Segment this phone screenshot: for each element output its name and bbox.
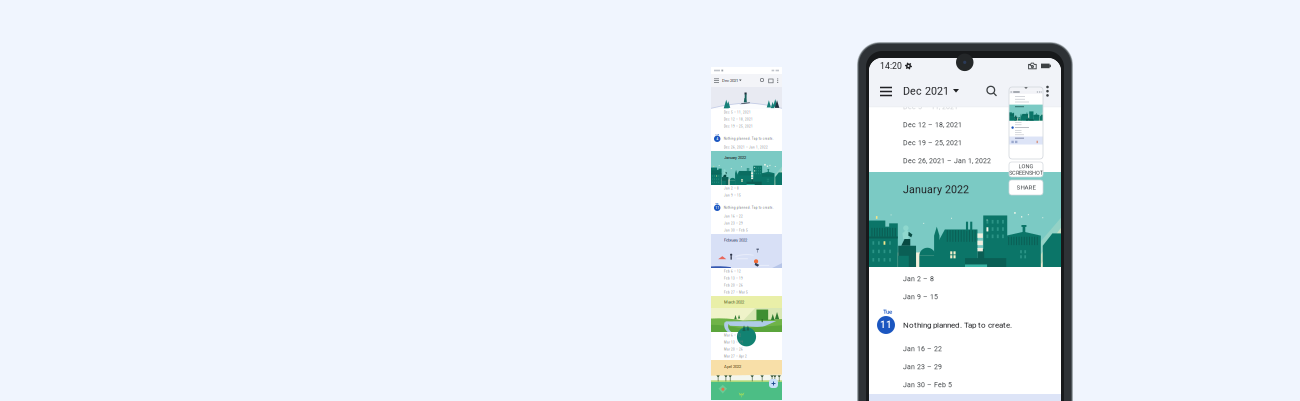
staticText: Dec 12 – 18, 2021 (724, 118, 753, 121)
staticText: Jan 30 – Feb 5 (724, 229, 748, 232)
button[interactable]: Dec 19 – 25, 2021 (869, 134, 1061, 152)
staticText: Jan 30 – Feb 5 (903, 381, 952, 389)
staticText: SCREENSHOT (1009, 169, 1043, 176)
staticText: January 2022 (724, 155, 746, 160)
staticText: Feb 13 – 19 (724, 277, 743, 280)
staticText: Mar 13 – 19 (724, 341, 743, 344)
staticText: Nothing planned. Tap to create. (724, 137, 774, 140)
staticText: Mar 27 – Apr 2 (724, 355, 747, 358)
staticText: Jan 9 – 15 (903, 293, 938, 301)
staticText: February 2022 (724, 238, 747, 242)
staticText: Jan 9 – 15 (724, 194, 741, 197)
button[interactable]: Dec 26, 2021 – Jan 1, 2022 (869, 152, 1061, 170)
staticText: Feb 27 – Mar 5 (724, 291, 748, 294)
button[interactable]: Dec 5 – 11, 2021 (869, 98, 1061, 116)
button[interactable]: Jan 30 – Feb 5 (869, 376, 1061, 394)
staticText: Dec 5 – 11, 2021 (903, 103, 958, 111)
staticText: Jan 23 – 29 (903, 363, 942, 371)
staticText: 11 (880, 319, 892, 331)
staticText: Tue (883, 308, 892, 315)
staticText: Dec 19 – 25, 2021 (724, 125, 753, 128)
staticText: Jan 2 – 8 (903, 275, 934, 283)
staticText: Dec 2021 (722, 78, 738, 83)
staticText: Nothing planned. Tap to create. (903, 320, 1012, 330)
staticText: Dec 2021 (903, 85, 949, 97)
staticText: January 2022 (903, 183, 969, 196)
staticText: Dec 26, 2021 – Jan 1, 2022 (903, 157, 991, 165)
staticText: Mar 20 – 26 (724, 348, 743, 351)
button[interactable]: SHARE (1009, 180, 1043, 195)
staticText: 4 (716, 137, 718, 141)
staticText: Mar 6 – 12 (724, 334, 741, 337)
staticText: LONG (1018, 163, 1033, 169)
button[interactable]: Dec 2021 (903, 81, 959, 101)
button[interactable]: More options (1042, 81, 1053, 100)
staticText: Jan 16 – 22 (724, 215, 743, 218)
staticText: March 2022 (724, 300, 744, 304)
staticText: Dec 5 – 11, 2021 (724, 111, 751, 114)
staticText: Feb 6 – 12 (724, 270, 741, 273)
staticText: Nothing planned. Tap to create. (724, 206, 774, 209)
button[interactable]: Open navigation menu (876, 81, 896, 100)
staticText: Dec 26, 2021 – Jan 1, 2022 (724, 146, 768, 149)
staticText: Tue (715, 202, 718, 205)
staticText: Dec 19 – 25, 2021 (903, 139, 962, 147)
button[interactable]: Jan 2 – 8 (869, 270, 1061, 288)
button[interactable]: Dec 12 – 18, 2021 (869, 116, 1061, 134)
button[interactable]: Create event (769, 379, 778, 388)
staticText: Sat (715, 133, 719, 136)
button[interactable]: Jan 9 – 15 (869, 288, 1061, 306)
button[interactable]: LONG (1009, 162, 1043, 177)
staticText: 14:20 (880, 61, 902, 71)
staticText: SHARE (1016, 184, 1035, 191)
staticText: Feb 20 – 26 (724, 284, 743, 287)
button[interactable]: Jan 16 – 22 (869, 340, 1061, 358)
button[interactable]: Search (982, 81, 1001, 100)
staticText: Jan 23 – 29 (724, 222, 743, 225)
staticText: Jan 16 – 22 (903, 345, 942, 353)
staticText: Jan 2 – 8 (724, 187, 739, 190)
staticText: April 2022 (724, 364, 741, 369)
staticText: 11 (715, 206, 719, 210)
button[interactable]: Jan 23 – 29 (869, 358, 1061, 376)
button[interactable]: Tue (869, 306, 1061, 340)
staticText: Dec 12 – 18, 2021 (903, 121, 962, 129)
